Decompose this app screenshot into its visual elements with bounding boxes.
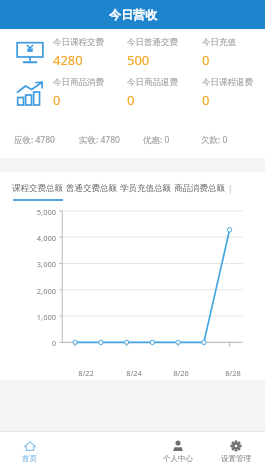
staticText: 优惠: 0 <box>143 134 170 146</box>
staticText: | <box>228 183 233 194</box>
staticText: 4280 <box>53 51 83 69</box>
staticText: 今日充值 <box>202 37 236 48</box>
staticText: 首页 <box>22 454 37 463</box>
button[interactable]: 欠款: 0 <box>201 134 259 146</box>
staticText: 0 <box>127 91 135 109</box>
button[interactable]: 实收: 4780 <box>79 134 143 146</box>
staticText: 个人中心 <box>163 454 193 463</box>
button[interactable]: 首页 <box>0 432 59 471</box>
button[interactable]: 课程交费总额 <box>12 183 63 201</box>
button[interactable]: 今日课程退费 <box>202 77 262 109</box>
staticText: 5,000 <box>36 207 56 217</box>
staticText: 应收: 4780 <box>14 134 55 146</box>
staticText: 今日商品退费 <box>127 77 178 88</box>
button[interactable]: 今日课程交费 <box>53 37 127 69</box>
staticText: 8/22 <box>78 368 94 378</box>
button[interactable]: 商品消费总额 <box>174 183 225 201</box>
button[interactable]: 优惠: 0 <box>143 134 201 146</box>
staticText: 8/24 <box>126 368 142 378</box>
staticText: 普通交费总额 <box>66 183 117 194</box>
staticText: 0 <box>202 91 210 109</box>
staticText: 0 <box>51 338 56 348</box>
staticText: 学员充值总额 <box>120 183 171 194</box>
staticText: 3,000 <box>36 259 56 269</box>
button[interactable]: 今日普通交费 <box>127 37 202 69</box>
staticText: 2,000 <box>36 286 56 296</box>
button[interactable]: 学员充值总额 <box>120 183 171 201</box>
other: Product statistics <box>7 76 53 110</box>
staticText: 500 <box>127 51 150 69</box>
staticText: 今日课程交费 <box>53 37 104 48</box>
staticText: 欠款: 0 <box>201 134 228 146</box>
other: Course payments <box>7 36 53 70</box>
button[interactable]: 今日商品消费 <box>53 77 127 109</box>
staticText: 1,000 <box>36 312 56 322</box>
staticText: 今日普通交费 <box>127 37 178 48</box>
staticText: 实收: 4780 <box>79 134 120 146</box>
staticText: 8/28 <box>225 368 241 378</box>
button[interactable]: 应收: 4780 <box>14 134 79 146</box>
staticText: 商品消费总额 <box>174 183 225 194</box>
staticText: 今日课程退费 <box>202 77 253 88</box>
staticText: 0 <box>202 51 210 69</box>
staticText: 8/26 <box>173 368 189 378</box>
staticText: 设置管理 <box>221 454 251 463</box>
button[interactable]: 设置管理 <box>207 432 265 471</box>
staticText: 4,000 <box>36 233 56 243</box>
staticText: 0 <box>53 91 61 109</box>
button[interactable]: 今日充值 <box>202 37 262 69</box>
button[interactable]: 普通交费总额 <box>66 183 117 201</box>
staticText: 今日营收 <box>109 7 157 22</box>
staticText: 今日商品消费 <box>53 77 104 88</box>
staticText: 课程交费总额 <box>12 183 63 194</box>
button[interactable]: 今日商品退费 <box>127 77 202 109</box>
button[interactable]: 个人中心 <box>149 432 207 471</box>
